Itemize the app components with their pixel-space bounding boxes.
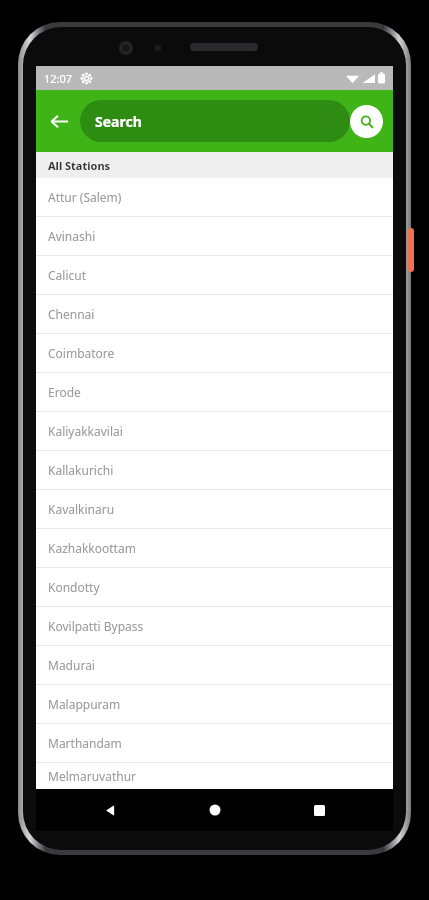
staticText: Kondotty bbox=[48, 579, 100, 595]
staticText: Kovilpatti Bypass bbox=[48, 618, 144, 634]
staticText: Melmaruvathur bbox=[48, 768, 137, 784]
button[interactable]: Kavalkinaru bbox=[36, 490, 393, 528]
staticText: Malappuram bbox=[48, 696, 121, 712]
button[interactable]: Avinashi bbox=[36, 217, 393, 255]
button[interactable]: Chennai bbox=[36, 295, 393, 333]
button[interactable]: Erode bbox=[36, 373, 393, 411]
button[interactable]: Calicut bbox=[36, 256, 393, 294]
staticText: Avinashi bbox=[48, 228, 96, 244]
button[interactable]: Search bbox=[80, 100, 350, 142]
button[interactable]: Madurai bbox=[36, 646, 393, 684]
button[interactable]: Kondotty bbox=[36, 568, 393, 606]
button[interactable]: Kazhakkoottam bbox=[36, 529, 393, 567]
staticText: Madurai bbox=[48, 657, 95, 673]
button[interactable]: Marthandam bbox=[36, 724, 393, 762]
staticText: All Stations bbox=[48, 158, 111, 173]
button[interactable]: Kallakurichi bbox=[36, 451, 393, 489]
other: Power bbox=[408, 228, 414, 272]
staticText: Marthandam bbox=[48, 735, 122, 751]
button[interactable]: Kaliyakkavilai bbox=[36, 412, 393, 450]
button[interactable]: Back bbox=[42, 104, 76, 138]
button[interactable]: Melmaruvathur bbox=[36, 763, 393, 789]
button[interactable]: Back bbox=[80, 789, 140, 831]
button[interactable]: Recent apps bbox=[289, 789, 349, 831]
staticText: Kallakurichi bbox=[48, 462, 114, 478]
staticText: Erode bbox=[48, 384, 81, 400]
button[interactable]: Home bbox=[185, 789, 245, 831]
staticText: Kazhakkoottam bbox=[48, 540, 136, 556]
staticText: Attur (Salem) bbox=[48, 189, 122, 205]
staticText: Coimbatore bbox=[48, 345, 115, 361]
staticText: Search bbox=[95, 112, 142, 131]
button[interactable]: Coimbatore bbox=[36, 334, 393, 372]
button[interactable]: Attur (Salem) bbox=[36, 178, 393, 216]
staticText: Kavalkinaru bbox=[48, 501, 115, 517]
staticText: 12:07 bbox=[44, 71, 73, 86]
staticText: Chennai bbox=[48, 306, 95, 322]
button[interactable]: Malappuram bbox=[36, 685, 393, 723]
staticText: Kaliyakkavilai bbox=[48, 423, 123, 439]
staticText: Calicut bbox=[48, 267, 87, 283]
button[interactable]: Kovilpatti Bypass bbox=[36, 607, 393, 645]
button[interactable]: Search bbox=[350, 105, 383, 138]
